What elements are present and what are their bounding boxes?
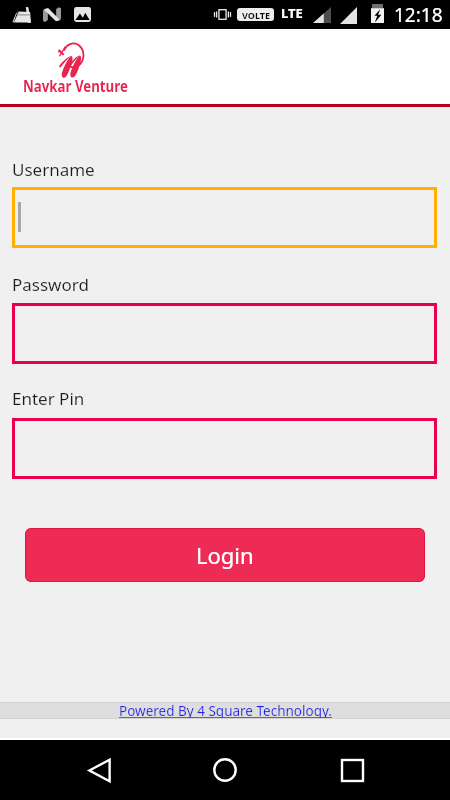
staticText: Username xyxy=(12,158,95,181)
staticText: VOLTE xyxy=(242,9,270,21)
staticText: LTE xyxy=(281,4,303,22)
staticText: Login xyxy=(196,540,254,570)
staticText: Enter Pin xyxy=(12,387,85,410)
staticText: Navkar Venture xyxy=(23,75,128,97)
button[interactable]: Home xyxy=(197,742,253,798)
button[interactable]: Recents xyxy=(324,742,380,798)
button[interactable]: Powered By 4 Square Technology. xyxy=(0,702,450,719)
button[interactable] xyxy=(12,303,437,364)
staticText: Password xyxy=(12,273,89,296)
button[interactable]: Login xyxy=(25,528,425,582)
button[interactable] xyxy=(12,418,437,479)
staticText: Powered By 4 Square Technology. xyxy=(119,702,332,719)
button[interactable] xyxy=(12,187,437,248)
staticText: 12:18 xyxy=(394,2,443,28)
button[interactable]: Back xyxy=(71,742,127,798)
